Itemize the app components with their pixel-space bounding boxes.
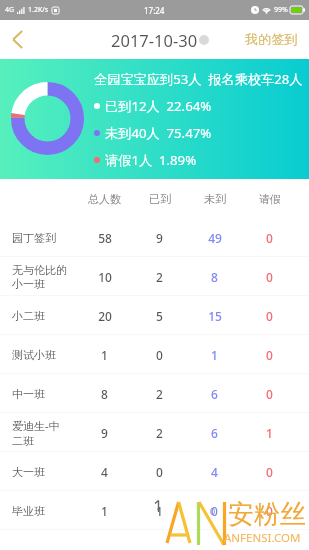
staticText: 2 (156, 269, 163, 285)
staticText: 1.2K/s (28, 5, 49, 15)
staticText: 1 (101, 503, 108, 519)
staticText: 大一班 (12, 465, 45, 479)
staticText: 0 (266, 386, 273, 402)
staticText: 0 (266, 347, 273, 363)
staticText: ANFENSI.COM (224, 530, 301, 546)
button[interactable]: 爱迪生-中 二班 (0, 413, 309, 452)
staticText: 中一班 (12, 387, 45, 401)
staticText: 请假1人 1.89% (105, 151, 197, 169)
staticText: 0 (156, 464, 163, 480)
staticText: 未到40人 75.47% (105, 124, 212, 142)
staticText: 99% (274, 5, 288, 15)
staticText: 我的签到 (245, 31, 298, 48)
staticText: 10 (98, 269, 112, 285)
staticText: 6 (211, 386, 218, 402)
staticText: 已到12人 22.64% (105, 97, 212, 115)
staticText: 1 (266, 425, 273, 441)
staticText: 17:24 (144, 5, 165, 16)
staticText: 1 (156, 503, 163, 519)
staticText: 总人数 (88, 192, 121, 206)
staticText: 爱迪生-中 二班 (12, 418, 60, 448)
staticText: 9 (101, 425, 108, 441)
button[interactable]: 小二班 (0, 296, 309, 335)
staticText: 请假 (259, 192, 281, 206)
staticText: 49 (208, 230, 222, 246)
staticText: 2017-10-30 (111, 29, 198, 51)
button[interactable]: 无与伦比的 小一班 (0, 257, 309, 296)
staticText: 1 (101, 347, 108, 363)
staticText: 0 (266, 464, 273, 480)
staticText: 2 (156, 386, 163, 402)
staticText: 8 (211, 269, 218, 285)
staticText: 0 (266, 230, 273, 246)
staticText: 未到 (204, 192, 226, 206)
staticText: 15 (208, 308, 222, 324)
staticText: 2 (156, 425, 163, 441)
staticText: 1 (211, 347, 218, 363)
button[interactable]: 中一班 (0, 374, 309, 413)
staticText: 0 (156, 347, 163, 363)
staticText: 8 (101, 386, 108, 402)
staticText: 4 (211, 464, 218, 480)
staticText: 20 (98, 308, 112, 324)
staticText: 0 (266, 269, 273, 285)
staticText: 58 (98, 230, 112, 246)
button[interactable]: Back (0, 20, 34, 59)
button[interactable]: 测试小班 (0, 335, 309, 374)
staticText: 5 (156, 308, 163, 324)
staticText: 4G (5, 5, 15, 15)
staticText: 4 (101, 464, 108, 480)
staticText: 0 (266, 503, 273, 519)
button[interactable]: 大一班 (0, 452, 309, 491)
staticText: 园丁签到 (12, 231, 56, 245)
button[interactable]: 毕业班 (0, 491, 309, 530)
staticText: 无与伦比的 小一班 (12, 263, 67, 291)
staticText: 6 (211, 425, 218, 441)
staticText: 小二班 (12, 309, 45, 323)
staticText: 测试小班 (12, 348, 56, 362)
staticText: 安粉丝 (228, 498, 306, 531)
staticText: 0 (211, 503, 218, 519)
button[interactable]: 我的签到 (245, 31, 298, 48)
staticText: 毕业班 (12, 504, 45, 518)
staticText: 已到 (149, 192, 171, 206)
staticText: 全园宝宝应到53人 报名乘校车28人 (94, 70, 303, 88)
staticText: 0 (210, 505, 216, 517)
staticText: 9 (156, 230, 163, 246)
button[interactable]: 园丁签到 (0, 218, 309, 257)
staticText: 0 (266, 308, 273, 324)
